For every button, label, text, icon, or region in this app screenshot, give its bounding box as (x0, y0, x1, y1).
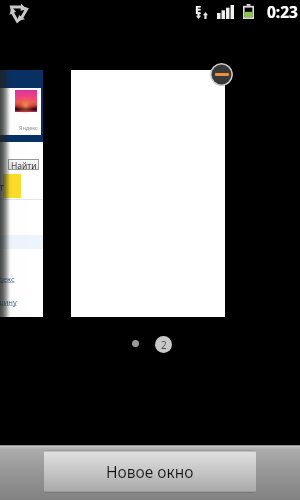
button[interactable]: Новое окно (44, 450, 256, 493)
button[interactable]: Яндекс (0, 70, 43, 317)
staticText: Найти (11, 160, 37, 169)
other: Recycle (10, 4, 27, 20)
staticText: E (195, 2, 202, 17)
staticText: Яндекс (0, 274, 15, 284)
staticText: машину (0, 297, 17, 307)
staticText: Яндекс (19, 124, 38, 131)
button[interactable]: Close window (210, 63, 233, 86)
staticText: 0:23 (267, 1, 298, 22)
button[interactable]: 2 (155, 336, 172, 353)
button[interactable] (71, 70, 225, 317)
staticText: Новое окно (106, 461, 194, 482)
staticText: т (0, 179, 5, 194)
button[interactable]: Window 1 (132, 340, 139, 347)
staticText: 2 (161, 338, 167, 352)
